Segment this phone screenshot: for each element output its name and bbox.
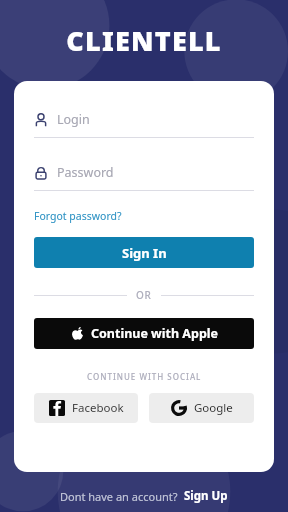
button[interactable]: Sign Up [178,488,228,504]
button[interactable]: Password [34,164,254,191]
button[interactable]: Facebook [34,393,138,423]
button[interactable]: Continue with Apple [34,318,254,349]
staticText: Forgot password? [34,209,122,223]
other: Login [34,113,48,127]
button[interactable]: Login [34,111,254,138]
button[interactable]: Google [149,393,254,423]
button[interactable]: Forgot password? [34,209,254,223]
staticText: Sign In [122,244,167,262]
other: Password [34,166,48,180]
staticText: Password [57,164,114,181]
staticText: Google [194,400,233,416]
staticText: Dont have an account? [60,489,178,504]
staticText: Continue with Apple [91,325,218,342]
staticText: Facebook [72,400,124,416]
button[interactable]: Sign In [34,237,254,268]
staticText: Login [57,111,90,128]
staticText: CLIENTELL [66,22,222,59]
staticText: CONTINUE WITH SOCIAL [87,371,202,382]
staticText: Sign Up [184,488,228,504]
staticText: OR [136,288,152,302]
